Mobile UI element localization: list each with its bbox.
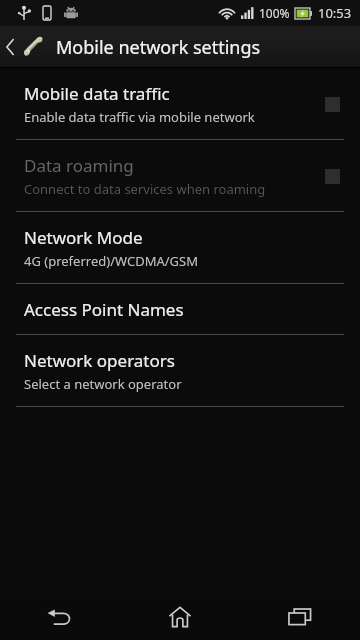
staticText: 10:53 [318,4,352,22]
button[interactable]: Back [0,594,120,640]
staticText: Mobile network settings [56,35,261,60]
staticText: Network operators [24,349,175,372]
button[interactable]: Network operators [0,335,360,406]
button[interactable]: Mobile data traffic [0,68,360,139]
staticText: 4G (preferred)/WCDMA/GSM [24,252,198,270]
button[interactable]: Back [0,26,360,68]
staticText: Connect to data services when roaming [24,180,266,198]
button[interactable]: Network Mode [0,212,360,283]
button[interactable]: Access Point Names [0,284,360,334]
button[interactable]: Home [120,594,240,640]
button[interactable]: Recent apps [240,594,360,640]
button[interactable]: Data roaming [0,140,360,211]
staticText: Mobile data traffic [24,82,170,105]
staticText: 100% [259,5,290,21]
staticText: Data roaming [24,154,134,177]
staticText: Select a network operator [24,375,182,393]
staticText: Network Mode [24,226,143,249]
staticText: Enable data traffic via mobile network [24,108,255,126]
staticText: Access Point Names [24,298,184,321]
